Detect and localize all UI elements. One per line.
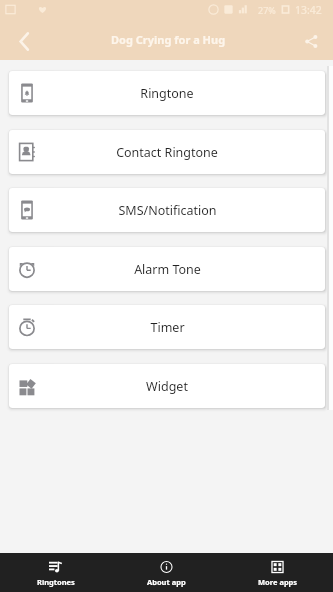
button[interactable]: More apps (222, 553, 333, 592)
staticText: Contact Ringtone (116, 144, 218, 161)
button[interactable]: Share (295, 25, 327, 57)
button[interactable]: Back (8, 25, 40, 57)
staticText: Ringtone (140, 85, 194, 102)
button[interactable]: Widget (9, 364, 325, 408)
staticText: 27% (258, 4, 276, 16)
staticText: More apps (258, 577, 298, 587)
button[interactable]: Alarm Tone (9, 247, 325, 291)
button[interactable]: Contact Ringtone (9, 130, 325, 174)
staticText: Dog Crying for a Hug (111, 32, 226, 47)
staticText: 13:42 (295, 3, 322, 17)
button[interactable]: Timer (9, 305, 325, 349)
staticText: SMS/Notification (118, 202, 217, 219)
staticText: Ringtones (37, 577, 75, 587)
button[interactable]: About app (111, 553, 222, 592)
button[interactable]: SMS/Notification (9, 188, 325, 232)
staticText: Widget (146, 378, 188, 395)
staticText: About app (147, 577, 186, 587)
button[interactable]: Ringtones (0, 553, 111, 592)
button[interactable]: Ringtone (9, 71, 325, 115)
staticText: Timer (150, 319, 185, 336)
staticText: Alarm Tone (134, 261, 201, 278)
